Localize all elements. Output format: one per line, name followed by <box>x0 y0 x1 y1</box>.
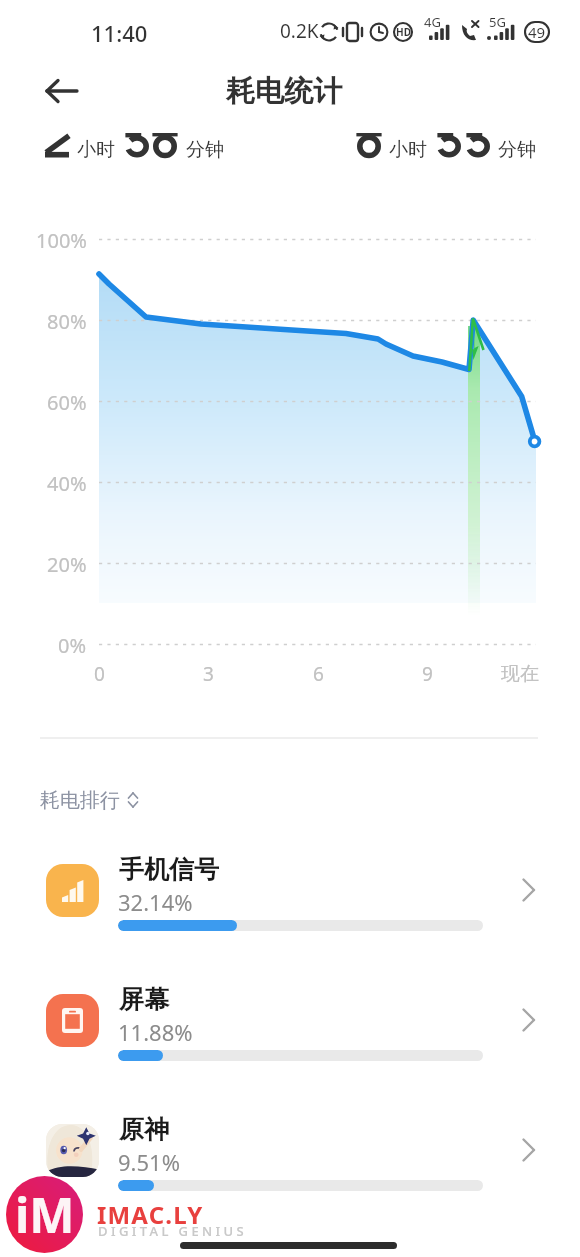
staticText: 耗电统计 <box>226 73 342 110</box>
staticText: 耗电排行 <box>40 788 120 813</box>
staticText: 32.14% <box>118 887 193 917</box>
button[interactable]: 屏幕 <box>0 973 580 1073</box>
staticText: 11.88% <box>118 1017 193 1047</box>
staticText: 手机信号 <box>119 854 219 885</box>
staticText: 4G <box>424 13 441 31</box>
staticText: 6 <box>313 661 324 687</box>
staticText: 小时 <box>389 138 427 162</box>
staticText: 100% <box>36 227 87 253</box>
staticText: 0 <box>94 661 105 687</box>
staticText: 屏幕 <box>119 984 169 1015</box>
staticText: 80% <box>47 308 87 334</box>
button[interactable]: 原神 <box>0 1103 580 1203</box>
staticText: 现在 <box>501 662 539 686</box>
button[interactable]: 耗电排行 <box>40 785 140 815</box>
staticText: 40% <box>47 470 87 496</box>
staticText: 9 <box>422 661 433 687</box>
staticText: HD <box>396 25 411 39</box>
staticText: iM <box>15 1182 75 1247</box>
button[interactable]: Back <box>32 66 92 116</box>
staticText: 60% <box>47 389 87 415</box>
staticText: DIGITAL GENIUS <box>98 1222 248 1240</box>
staticText: 3 <box>203 661 214 687</box>
button[interactable]: 手机信号 <box>0 843 580 943</box>
staticText: IMAC.LY <box>97 1198 204 1231</box>
staticText: 0.2K <box>280 18 319 44</box>
staticText: 原神 <box>119 1114 169 1145</box>
staticText: 11:40 <box>91 18 148 44</box>
staticText: 0% <box>58 632 87 658</box>
staticText: 小时 <box>77 138 115 162</box>
staticText: 49 <box>528 22 546 42</box>
staticText: 20% <box>47 551 87 577</box>
staticText: 分钟 <box>186 138 224 162</box>
staticText: 9.51% <box>118 1147 180 1177</box>
staticText: 5G <box>489 13 506 31</box>
staticText: 分钟 <box>498 138 536 162</box>
